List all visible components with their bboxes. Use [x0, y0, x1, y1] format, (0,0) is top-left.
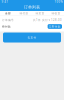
staticText: 9:41 — [1, 0, 8, 3]
staticText: 待付款 — [2, 25, 11, 28]
staticText: 待付款 — [19, 12, 28, 15]
staticText: 订单编号 — [2, 18, 14, 22]
button[interactable]: 待收货 — [48, 11, 64, 15]
staticText: 共1件 实付￥128.00 — [33, 18, 62, 22]
button[interactable]: 待付款 — [16, 11, 32, 15]
staticText: 100% — [54, 0, 62, 3]
button[interactable]: 全部 — [0, 11, 16, 15]
staticText: 全部 — [5, 12, 11, 15]
staticText: 待收货 — [51, 12, 60, 15]
button[interactable]: 去支付 — [3, 32, 61, 42]
button[interactable]: 待发货 — [32, 11, 48, 15]
button[interactable]: 立即付款 — [48, 24, 62, 29]
staticText: 订单列表 — [24, 5, 40, 10]
staticText: 立即付款 — [49, 25, 61, 28]
staticText: 待发货 — [35, 12, 44, 15]
staticText: 去支付 — [27, 36, 36, 39]
